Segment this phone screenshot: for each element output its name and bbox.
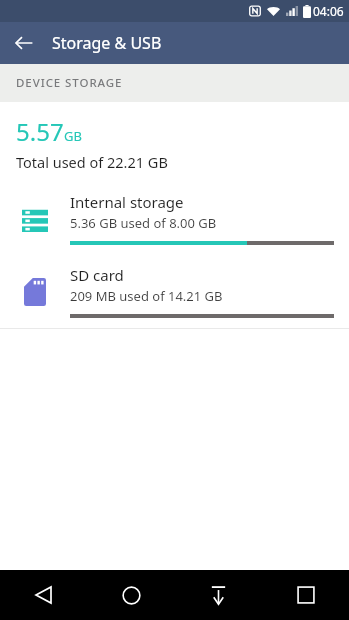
staticText: Internal storage [70, 192, 184, 212]
staticText: GB [64, 127, 82, 145]
button[interactable]: SD card [0, 255, 349, 328]
button[interactable]: Recents [262, 570, 349, 620]
staticText: 209 MB used of 14.21 GB [70, 287, 223, 305]
button[interactable]: Internal storage [0, 182, 349, 255]
staticText: SD card [70, 265, 124, 285]
staticText: 5.57 [16, 115, 64, 148]
staticText: 04:06 [313, 3, 344, 19]
staticText: DEVICE STORAGE [16, 75, 123, 91]
button[interactable]: Back [7, 26, 41, 60]
button[interactable]: Home [88, 570, 175, 620]
staticText: Total used of 22.21 GB [16, 152, 168, 172]
staticText: Storage & USB [52, 32, 162, 54]
button[interactable]: Back [0, 570, 88, 620]
staticText: 5.36 GB used of 8.00 GB [70, 214, 217, 232]
button[interactable]: Hide keyboard [175, 570, 262, 620]
